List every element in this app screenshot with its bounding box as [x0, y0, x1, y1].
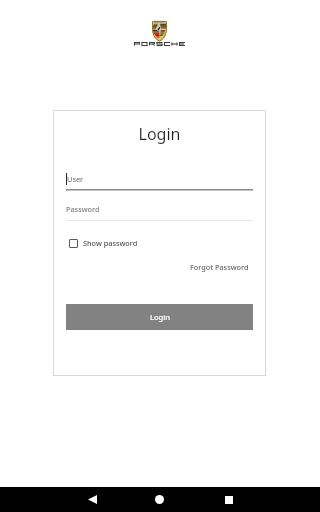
- staticText: Password: [66, 204, 100, 214]
- staticText: User: [67, 174, 84, 184]
- staticText: Login: [53, 123, 266, 145]
- button[interactable]: Home: [137, 487, 182, 512]
- button[interactable]: Forgot Password: [178, 259, 249, 275]
- staticText: Login: [150, 312, 170, 322]
- button[interactable]: Recent apps: [206, 487, 251, 512]
- button[interactable]: Password input: [66, 203, 253, 225]
- button[interactable]: User name input: [66, 172, 253, 194]
- staticText: Forgot Password: [190, 262, 249, 272]
- button[interactable]: Login: [66, 304, 253, 330]
- button[interactable]: Back: [70, 487, 115, 512]
- button[interactable]: Show password: [69, 238, 138, 248]
- staticText: Show password: [83, 238, 138, 248]
